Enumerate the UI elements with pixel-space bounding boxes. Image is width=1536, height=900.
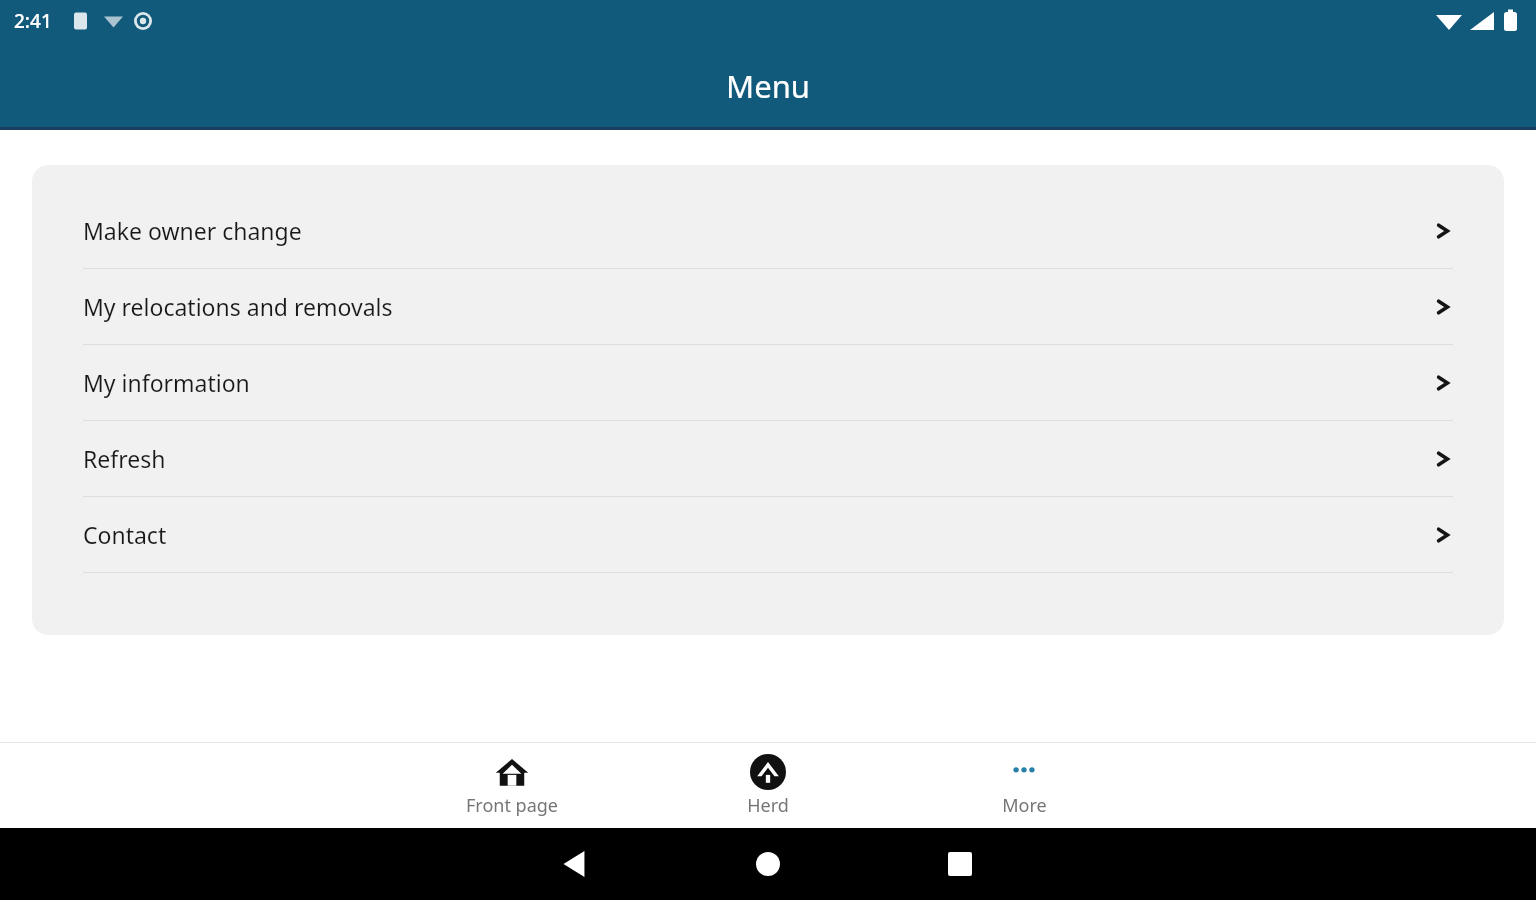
staticText: My relocations and removals (83, 291, 1433, 322)
staticText: 2:41 (14, 8, 52, 34)
button[interactable]: Contact (32, 497, 1504, 572)
staticText: My information (83, 367, 1433, 398)
staticText: Contact (83, 519, 1433, 550)
button[interactable]: My relocations and removals (32, 269, 1504, 344)
staticText: Refresh (83, 443, 1433, 474)
staticText: More (1002, 793, 1047, 818)
staticText: Make owner change (83, 215, 1433, 246)
button[interactable]: Front page (384, 743, 640, 828)
button[interactable]: More (896, 743, 1152, 828)
staticText: Front page (466, 793, 558, 818)
staticText: Menu (726, 65, 810, 107)
button[interactable]: My information (32, 345, 1504, 420)
button[interactable]: Make owner change (32, 193, 1504, 268)
button[interactable]: Refresh (32, 421, 1504, 496)
staticText: Herd (747, 793, 789, 818)
button[interactable]: Herd (640, 743, 896, 828)
